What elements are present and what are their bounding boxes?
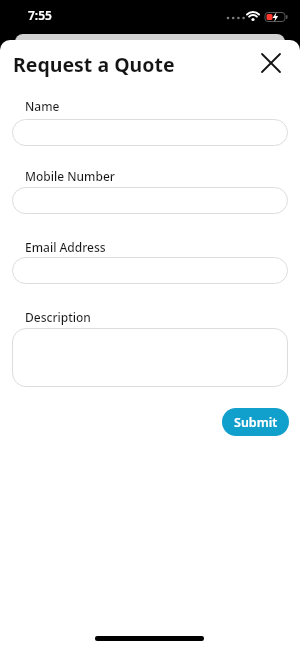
staticText: Name	[25, 98, 60, 114]
button[interactable]	[12, 328, 288, 387]
staticText: Mobile Number	[25, 168, 115, 184]
button[interactable]	[12, 187, 288, 214]
button[interactable]	[256, 48, 286, 78]
staticText: Email Address	[25, 239, 106, 255]
staticText: 7:55	[28, 7, 52, 23]
button[interactable]	[12, 119, 288, 146]
staticText: Description	[25, 309, 91, 325]
button[interactable]: Submit	[222, 408, 289, 436]
staticText: Submit	[234, 414, 278, 431]
button[interactable]	[12, 257, 288, 284]
staticText: Request a Quote	[13, 51, 175, 78]
